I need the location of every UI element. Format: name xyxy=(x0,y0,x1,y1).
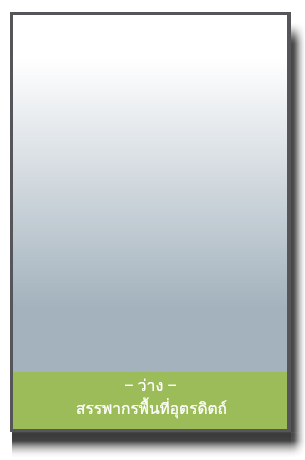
button[interactable]: − ว่าง − xyxy=(13,372,287,429)
staticText: สรรพากรพื้นที่อุตรดิตถ์ xyxy=(76,396,227,421)
staticText: − ว่าง − xyxy=(124,373,177,398)
